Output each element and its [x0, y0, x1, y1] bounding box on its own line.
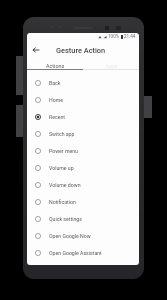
staticText: Volume down: [49, 182, 81, 188]
staticText: Gesture Action: [56, 46, 106, 55]
staticText: Switch app: [49, 131, 75, 137]
staticText: Recent: [49, 114, 65, 120]
button[interactable]: Open Google Assistant: [27, 244, 139, 261]
button[interactable]: Volume down: [27, 176, 139, 193]
staticText: Volume up: [49, 165, 74, 171]
button[interactable]: Open Google Now: [27, 227, 139, 244]
staticText: 100%: [108, 34, 120, 39]
button[interactable]: Actions: [27, 57, 83, 69]
staticText: Back: [49, 80, 61, 86]
staticText: 21:44: [124, 34, 136, 39]
staticText: Quick settings: [49, 216, 82, 222]
staticText: Actions: [46, 63, 65, 69]
button[interactable]: Notification: [27, 193, 139, 210]
staticText: Open Google Now: [49, 233, 91, 239]
button[interactable]: Back: [27, 74, 139, 91]
button[interactable]: Switch app: [27, 125, 139, 142]
button[interactable]: Recent: [27, 108, 139, 125]
button[interactable]: Home: [27, 91, 139, 108]
staticText: Apps: [105, 63, 118, 69]
button[interactable]: Back: [27, 40, 44, 60]
button[interactable]: Volume up: [27, 159, 139, 176]
staticText: Power menu: [49, 148, 78, 154]
staticText: Home: [49, 97, 63, 103]
button[interactable]: Power menu: [27, 142, 139, 159]
staticText: Open Google Assistant: [49, 250, 102, 256]
button[interactable]: Quick settings: [27, 210, 139, 227]
staticText: Notification: [49, 199, 76, 205]
